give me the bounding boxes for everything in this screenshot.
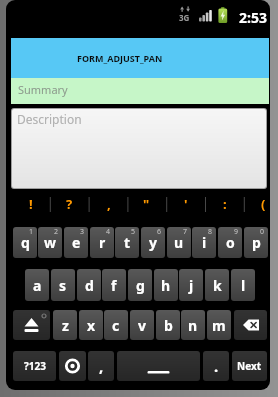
staticText: Description: [17, 111, 82, 127]
staticText: ,: [99, 356, 104, 376]
button[interactable]: u: [167, 227, 191, 258]
button[interactable]: [234, 310, 267, 340]
staticText: z: [62, 316, 69, 335]
staticText: Next: [237, 359, 262, 373]
button[interactable]: z: [53, 310, 77, 340]
button[interactable]: [59, 351, 86, 381]
staticText: ,: [107, 195, 111, 213]
button[interactable]: l: [231, 269, 255, 301]
staticText: ?123: [24, 359, 46, 373]
staticText: (: [261, 195, 266, 213]
staticText: ': [184, 195, 188, 213]
staticText: :: [223, 195, 227, 213]
staticText: r: [99, 233, 106, 252]
staticText: n: [188, 316, 198, 335]
button[interactable]: s: [51, 269, 75, 301]
button[interactable]: y: [141, 227, 165, 258]
button[interactable]: x: [79, 310, 103, 340]
button[interactable]: ': [166, 192, 205, 216]
button[interactable]: f: [102, 269, 126, 301]
staticText: j: [189, 276, 194, 295]
staticText: y: [149, 233, 157, 252]
button[interactable]: (: [244, 192, 269, 216]
staticText: 8: [208, 227, 213, 237]
staticText: 0: [260, 227, 265, 237]
button[interactable]: !: [11, 192, 50, 216]
button[interactable]: t: [115, 227, 139, 258]
button[interactable]: o: [218, 227, 242, 258]
button[interactable]: e: [64, 227, 88, 258]
staticText: 3G: [179, 12, 190, 23]
button[interactable]: ,: [89, 192, 128, 216]
staticText: 2:53: [239, 8, 267, 27]
button[interactable]: b: [156, 310, 180, 340]
button[interactable]: v: [130, 310, 154, 340]
staticText: i: [202, 233, 207, 252]
button[interactable]: a: [25, 269, 49, 301]
staticText: u: [174, 233, 184, 252]
staticText: v: [138, 316, 146, 335]
button[interactable]: FORM_ADJUST_PAN: [11, 38, 269, 78]
staticText: b: [164, 316, 173, 335]
button[interactable]: ": [127, 192, 166, 216]
button[interactable]: h: [154, 269, 178, 301]
staticText: ?: [66, 195, 73, 213]
staticText: ": [143, 195, 150, 213]
staticText: .: [214, 356, 219, 376]
staticText: o: [226, 233, 235, 252]
button[interactable]: m: [207, 310, 231, 340]
staticText: 1: [29, 227, 34, 237]
button[interactable]: n: [181, 310, 205, 340]
staticText: g: [136, 276, 145, 295]
staticText: 4: [106, 227, 111, 237]
staticText: 3: [80, 227, 85, 237]
button[interactable]: .: [203, 351, 229, 381]
button[interactable]: c: [104, 310, 128, 340]
staticText: d: [85, 276, 94, 295]
button[interactable]: [13, 310, 50, 340]
staticText: t: [124, 233, 131, 252]
button[interactable]: ?: [50, 192, 89, 216]
staticText: x: [87, 316, 96, 335]
staticText: FORM_ADJUST_PAN: [77, 52, 163, 64]
button[interactable]: d: [77, 269, 101, 301]
button[interactable]: :: [205, 192, 244, 216]
button[interactable]: ,: [88, 351, 114, 381]
button[interactable]: j: [179, 269, 203, 301]
button[interactable]: ?123: [13, 351, 56, 381]
staticText: f: [111, 276, 117, 295]
staticText: q: [21, 233, 30, 252]
staticText: h: [161, 276, 171, 295]
staticText: !: [29, 195, 33, 213]
staticText: w: [44, 233, 56, 252]
button[interactable]: Summary: [11, 78, 269, 104]
button[interactable]: q: [13, 227, 37, 258]
staticText: p: [252, 233, 261, 252]
button[interactable]: Next: [232, 351, 267, 381]
staticText: l: [241, 276, 246, 295]
staticText: s: [59, 276, 67, 295]
button[interactable]: k: [205, 269, 229, 301]
button[interactable]: Description: [11, 108, 267, 189]
button[interactable]: p: [244, 227, 268, 258]
staticText: 5: [131, 227, 136, 237]
button[interactable]: w: [38, 227, 62, 258]
button[interactable]: i: [192, 227, 216, 258]
button[interactable]: [117, 351, 200, 381]
staticText: a: [33, 276, 42, 295]
staticText: 2: [54, 227, 59, 237]
staticText: c: [112, 316, 120, 335]
staticText: m: [212, 316, 226, 335]
staticText: 7: [183, 227, 188, 237]
staticText: e: [72, 233, 81, 252]
staticText: k: [213, 276, 222, 295]
staticText: 6: [157, 227, 162, 237]
button[interactable]: g: [128, 269, 152, 301]
button[interactable]: r: [90, 227, 114, 258]
staticText: 9: [234, 227, 239, 237]
staticText: Summary: [18, 82, 68, 97]
